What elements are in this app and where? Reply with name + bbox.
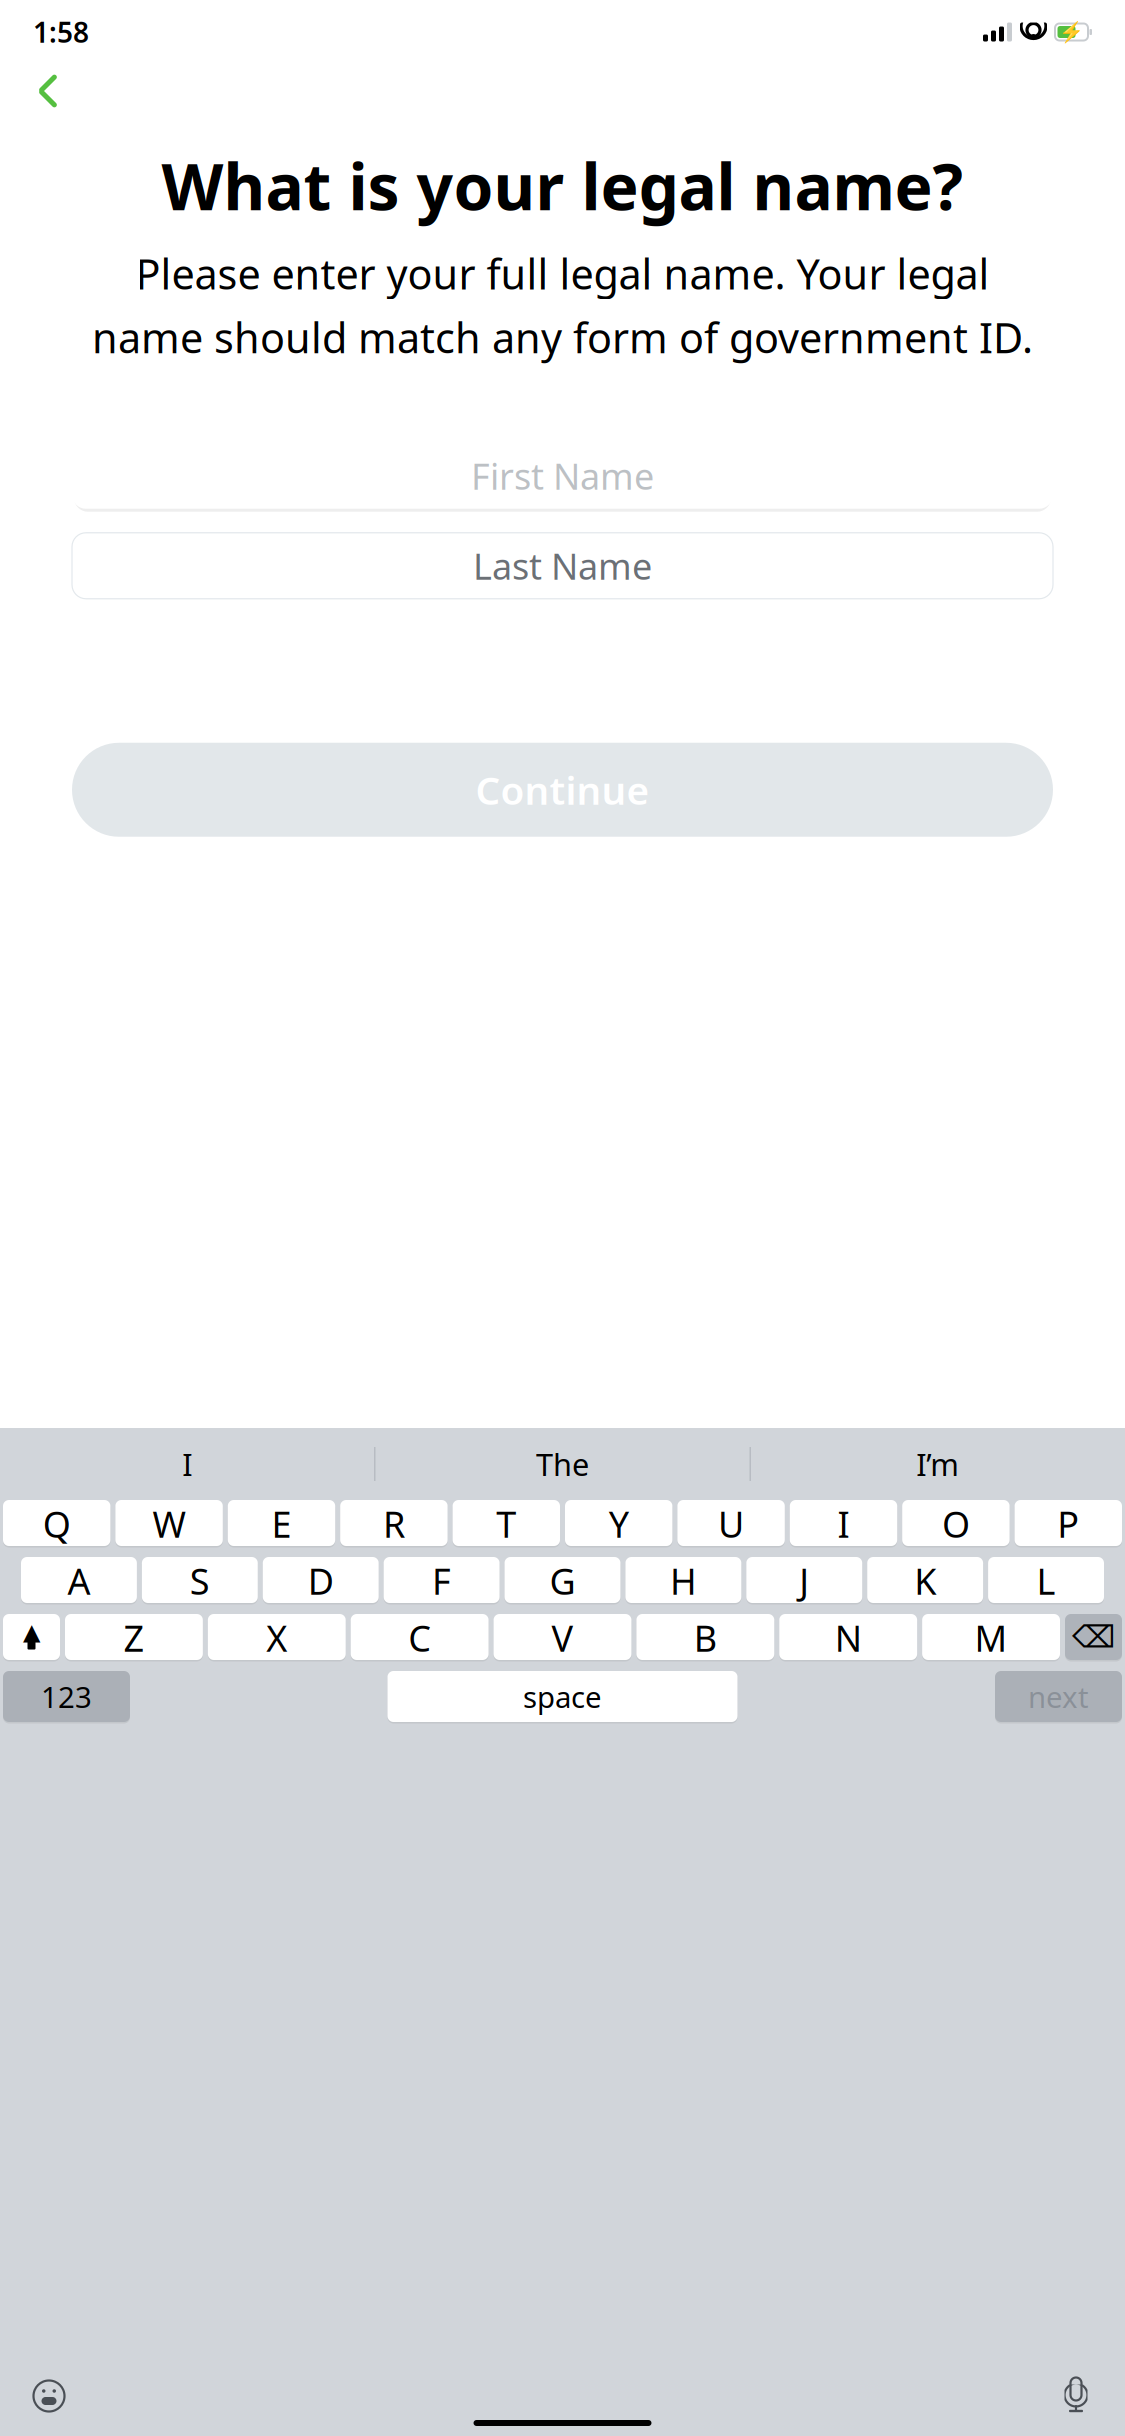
button[interactable]: V	[494, 1614, 631, 1660]
button[interactable]: Shift	[3, 1614, 60, 1660]
staticText: K	[914, 1557, 936, 1603]
button[interactable]: K	[867, 1557, 983, 1603]
button[interactable]: T	[453, 1500, 560, 1546]
staticText: A	[67, 1557, 90, 1603]
button[interactable]: B	[636, 1614, 774, 1660]
button[interactable]: next	[995, 1671, 1122, 1722]
staticText: V	[551, 1614, 573, 1660]
button[interactable]: Z	[65, 1614, 203, 1660]
staticText: 123	[41, 1677, 92, 1716]
button[interactable]: C	[351, 1614, 489, 1660]
staticText: next	[1028, 1677, 1089, 1716]
button[interactable]: 123	[3, 1671, 130, 1722]
staticText: 1:58	[33, 13, 89, 51]
button[interactable]: First Name	[72, 443, 1053, 509]
staticText: Q	[43, 1500, 71, 1546]
button[interactable]: The	[375, 1439, 750, 1489]
button[interactable]: Y	[565, 1500, 672, 1546]
staticText: The	[536, 1444, 589, 1484]
button[interactable]: J	[746, 1557, 862, 1603]
button[interactable]: E	[228, 1500, 335, 1546]
staticText: Please enter your full legal name. Your …	[135, 246, 989, 301]
staticText: F	[432, 1557, 451, 1603]
button[interactable]: L	[988, 1557, 1104, 1603]
button[interactable]: S	[142, 1557, 258, 1603]
staticText: ▲	[23, 1619, 40, 1645]
staticText: B	[694, 1614, 717, 1660]
button[interactable]: U	[677, 1500, 785, 1546]
button[interactable]: W	[115, 1500, 223, 1546]
staticText: R	[383, 1500, 405, 1546]
staticText: Y	[609, 1500, 629, 1546]
staticText: D	[308, 1557, 334, 1603]
button[interactable]: Dictation	[1052, 2372, 1100, 2420]
button[interactable]: O	[902, 1500, 1010, 1546]
staticText: Continue	[475, 764, 649, 815]
button[interactable]: space	[387, 1671, 737, 1722]
button[interactable]: Delete	[1065, 1614, 1122, 1660]
staticText: ⌫	[1072, 1620, 1115, 1654]
staticText: name should match any form of government…	[92, 310, 1033, 365]
staticText: I	[837, 1500, 849, 1546]
button[interactable]: Back	[22, 65, 74, 117]
button[interactable]: Emoji keyboard	[25, 2372, 73, 2420]
button[interactable]: H	[625, 1557, 741, 1603]
button[interactable]: N	[779, 1614, 917, 1660]
button[interactable]: A	[21, 1557, 137, 1603]
staticText: E	[271, 1500, 291, 1546]
staticText: G	[549, 1557, 575, 1603]
button[interactable]: D	[263, 1557, 379, 1603]
button[interactable]: F	[384, 1557, 500, 1603]
staticText: X	[266, 1614, 287, 1660]
staticText: What is your legal name?	[161, 143, 963, 228]
staticText: P	[1057, 1500, 1079, 1546]
staticText: I	[182, 1444, 192, 1484]
button[interactable]: I	[790, 1500, 897, 1546]
button[interactable]: G	[505, 1557, 620, 1603]
button[interactable]: X	[208, 1614, 346, 1660]
staticText: O	[942, 1500, 970, 1546]
button[interactable]: Q	[3, 1500, 110, 1546]
staticText: J	[799, 1557, 809, 1603]
button[interactable]: P	[1015, 1500, 1122, 1546]
staticText: N	[835, 1614, 862, 1660]
staticText: space	[523, 1677, 602, 1716]
button[interactable]: Continue	[72, 743, 1053, 837]
staticText: W	[153, 1500, 186, 1546]
button[interactable]: M	[922, 1614, 1060, 1660]
staticText: C	[408, 1614, 431, 1660]
staticText: L	[1037, 1557, 1056, 1603]
staticText: I’m	[916, 1444, 959, 1484]
staticText: Last Name	[473, 542, 652, 590]
staticText: ⚡	[1059, 21, 1084, 43]
button[interactable]: I’m	[751, 1439, 1125, 1489]
button[interactable]: Last Name	[72, 533, 1053, 599]
staticText: S	[190, 1557, 210, 1603]
button[interactable]: I	[0, 1439, 374, 1489]
button[interactable]: R	[340, 1500, 448, 1546]
staticText: First Name	[471, 452, 654, 500]
staticText: U	[718, 1500, 744, 1546]
staticText: Z	[123, 1614, 144, 1660]
staticText: M	[975, 1614, 1008, 1660]
staticText: T	[496, 1500, 516, 1546]
staticText: H	[670, 1557, 697, 1603]
